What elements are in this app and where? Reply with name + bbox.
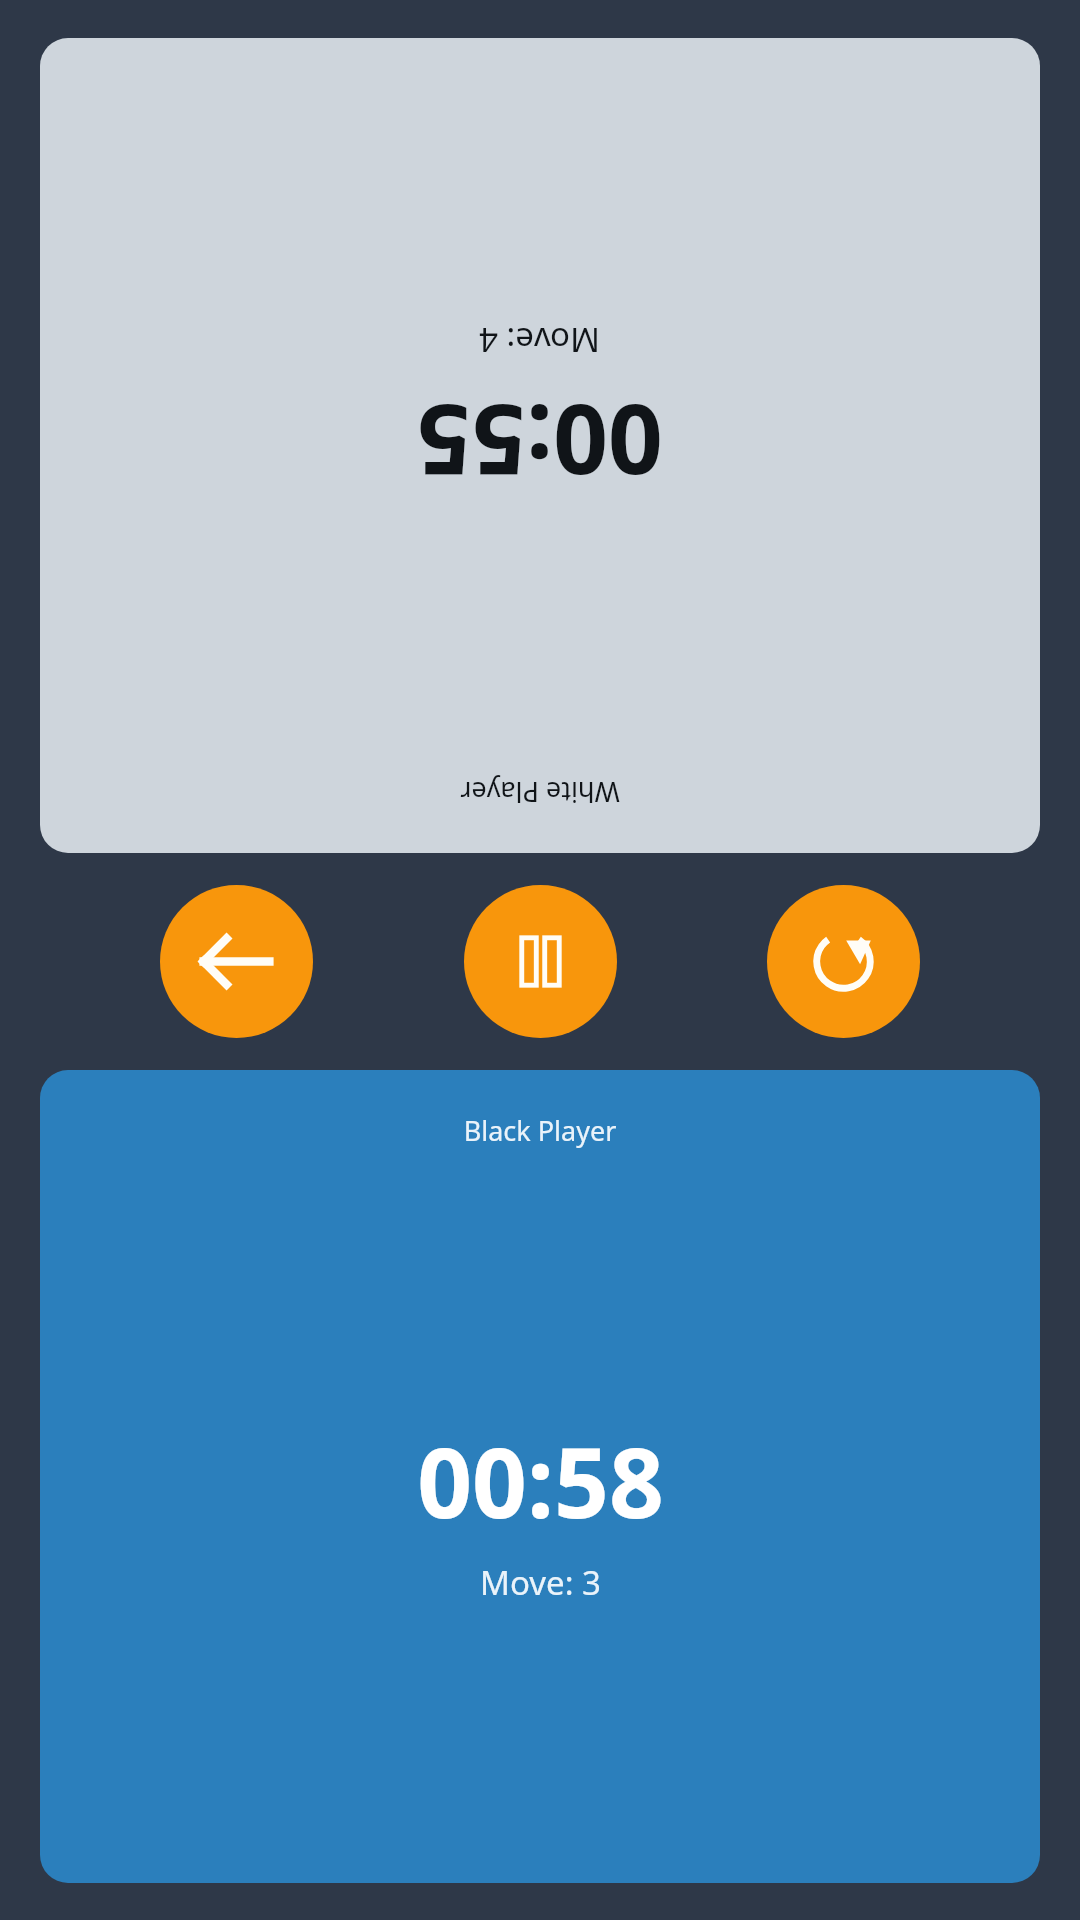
button[interactable]: White Player <box>40 38 1040 853</box>
staticText: 00:58 <box>417 1415 664 1546</box>
button[interactable]: Pause <box>464 885 617 1038</box>
button[interactable]: Back <box>160 885 313 1038</box>
staticText: Move: 4 <box>479 318 600 363</box>
staticText: White Player <box>40 774 1040 811</box>
button[interactable]: Restart <box>767 885 920 1038</box>
staticText: Black Player <box>40 1112 1040 1149</box>
button[interactable]: Black Player <box>40 1070 1040 1883</box>
staticText: Move: 3 <box>480 1560 601 1605</box>
staticText: 00:55 <box>416 377 663 508</box>
